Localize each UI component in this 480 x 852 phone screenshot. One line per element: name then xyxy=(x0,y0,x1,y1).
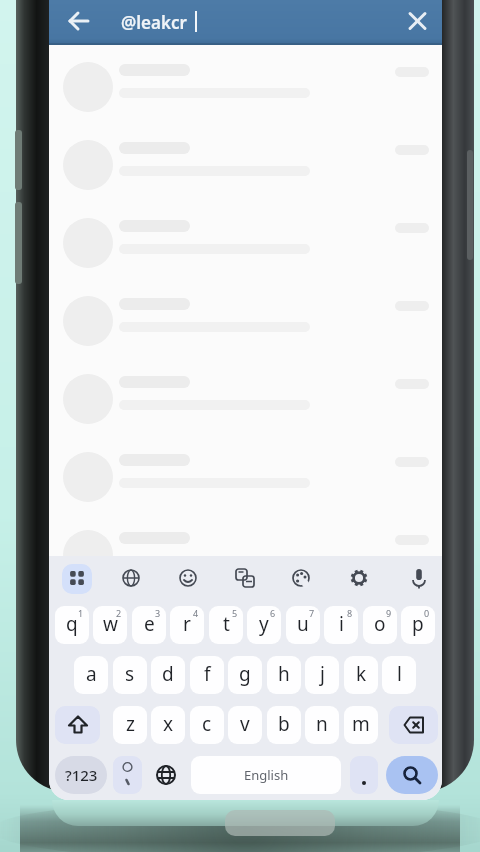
button[interactable] xyxy=(149,756,182,794)
button[interactable]: z xyxy=(113,706,147,744)
button[interactable]: @leakcr xyxy=(49,0,442,45)
button[interactable] xyxy=(231,564,259,592)
staticText: e xyxy=(144,611,155,637)
button[interactable]: d xyxy=(151,656,185,694)
button[interactable] xyxy=(49,438,442,516)
button[interactable] xyxy=(63,5,95,37)
button[interactable] xyxy=(345,564,373,592)
button[interactable]: j xyxy=(305,656,339,694)
staticText: ?123 xyxy=(65,765,98,785)
staticText: l xyxy=(397,661,402,687)
button[interactable]: k xyxy=(344,656,378,694)
button[interactable]: b xyxy=(267,706,301,744)
button[interactable] xyxy=(287,564,315,592)
staticText: c xyxy=(202,711,212,737)
button[interactable]: i xyxy=(324,606,358,644)
button[interactable] xyxy=(49,204,442,282)
button[interactable] xyxy=(350,756,378,794)
staticText: 1 xyxy=(78,607,84,619)
button[interactable]: o xyxy=(363,606,397,644)
button[interactable]: q xyxy=(55,606,89,644)
button[interactable] xyxy=(49,360,442,438)
button[interactable]: v xyxy=(228,706,262,744)
staticText: English xyxy=(244,766,289,784)
staticText: x xyxy=(163,711,174,737)
button[interactable]: m xyxy=(344,706,378,744)
staticText: j xyxy=(320,661,325,687)
button[interactable]: a xyxy=(74,656,108,694)
staticText: g xyxy=(239,661,251,687)
staticText: d xyxy=(162,661,174,687)
button[interactable] xyxy=(405,564,433,592)
button[interactable]: g xyxy=(228,656,262,694)
button[interactable]: English xyxy=(191,756,341,794)
button[interactable]: l xyxy=(382,656,416,694)
button[interactable] xyxy=(401,5,433,37)
staticText: m xyxy=(352,711,370,737)
button[interactable]: p xyxy=(401,606,435,644)
staticText: 4 xyxy=(193,607,199,619)
button[interactable] xyxy=(49,282,442,360)
staticText: a xyxy=(86,661,97,687)
staticText: q xyxy=(66,611,78,637)
button[interactable]: x xyxy=(151,706,185,744)
button[interactable]: n xyxy=(305,706,339,744)
staticText: 3 xyxy=(155,607,161,619)
staticText: z xyxy=(126,711,135,737)
button[interactable] xyxy=(63,564,91,592)
staticText: y xyxy=(259,611,269,637)
staticText: 9 xyxy=(386,607,392,619)
staticText: 6 xyxy=(270,607,276,619)
button[interactable] xyxy=(386,756,438,794)
button[interactable] xyxy=(55,706,100,744)
button[interactable]: e xyxy=(132,606,166,644)
staticText: 7 xyxy=(309,607,315,619)
button[interactable]: u xyxy=(286,606,320,644)
staticText: k xyxy=(356,661,367,687)
button[interactable]: h xyxy=(267,656,301,694)
staticText: i xyxy=(339,611,344,637)
staticText: h xyxy=(278,661,290,687)
button[interactable] xyxy=(389,706,438,744)
staticText: b xyxy=(278,711,290,737)
staticText: 5 xyxy=(232,607,238,619)
button[interactable]: f xyxy=(190,656,224,694)
staticText: 2 xyxy=(116,607,122,619)
button[interactable] xyxy=(62,564,92,594)
button[interactable] xyxy=(174,564,202,592)
staticText: 8 xyxy=(347,607,353,619)
button[interactable] xyxy=(113,756,142,794)
button[interactable]: c xyxy=(190,706,224,744)
staticText: p xyxy=(412,611,424,637)
button[interactable]: r xyxy=(170,606,204,644)
staticText: 0 xyxy=(424,607,430,619)
staticText: o xyxy=(374,611,386,637)
staticText: v xyxy=(240,711,250,737)
button[interactable]: t xyxy=(209,606,243,644)
staticText: w xyxy=(103,611,118,637)
staticText: u xyxy=(297,611,309,637)
staticText: r xyxy=(183,611,191,637)
staticText: @leakcr xyxy=(121,11,187,34)
staticText: t xyxy=(223,611,230,637)
button[interactable] xyxy=(49,48,442,126)
button[interactable]: ?123 xyxy=(55,756,107,794)
staticText: n xyxy=(316,711,328,737)
button[interactable]: y xyxy=(247,606,281,644)
staticText: s xyxy=(125,661,135,687)
button[interactable] xyxy=(49,126,442,204)
button[interactable] xyxy=(49,516,442,594)
staticText: f xyxy=(204,661,211,687)
button[interactable]: s xyxy=(113,656,147,694)
button[interactable] xyxy=(117,564,145,592)
button[interactable]: w xyxy=(93,606,127,644)
